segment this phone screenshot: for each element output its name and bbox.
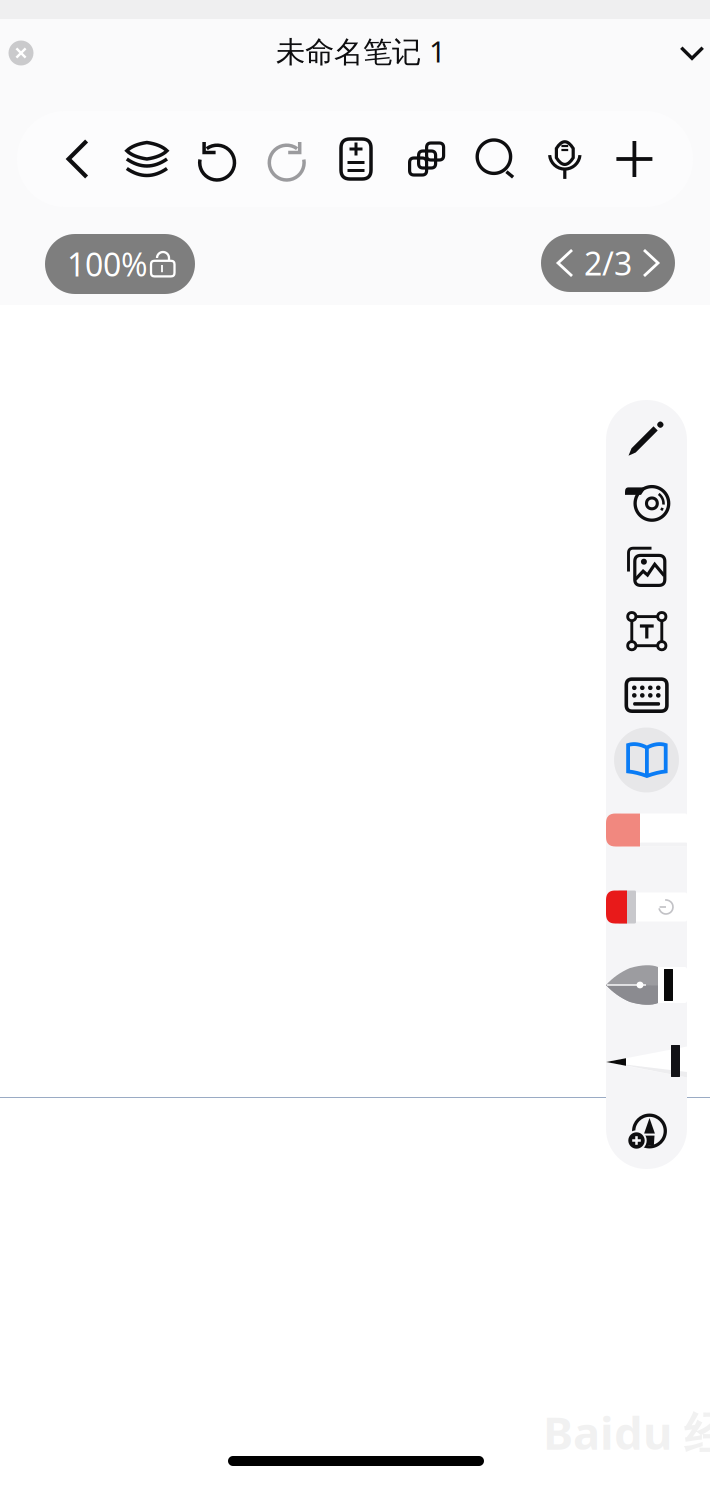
button[interactable]: Layers xyxy=(112,111,182,207)
button[interactable]: Marker xyxy=(606,884,687,930)
staticText: 2/3 xyxy=(584,242,632,284)
button[interactable]: Highlighter xyxy=(606,807,687,853)
button[interactable]: Search xyxy=(460,111,530,207)
button[interactable]: Undo xyxy=(182,111,252,207)
staticText: Baidu 经验 xyxy=(543,1402,710,1462)
button[interactable]: Insert image xyxy=(606,537,687,597)
button[interactable]: Pen xyxy=(606,407,687,467)
button[interactable]: Pencil xyxy=(606,1039,687,1085)
button[interactable]: Redo xyxy=(252,111,321,207)
button[interactable]: Tape xyxy=(606,472,687,532)
button[interactable]: Keyboard xyxy=(606,665,687,725)
button[interactable]: Templates xyxy=(391,111,460,207)
button[interactable]: Next page xyxy=(632,234,670,292)
button[interactable]: Previous page xyxy=(546,234,584,292)
button[interactable]: Page options xyxy=(321,111,391,207)
button[interactable]: Collapse note xyxy=(657,21,710,85)
button[interactable]: Add tool xyxy=(606,1103,687,1163)
button[interactable]: Close xyxy=(0,21,53,85)
staticText: 100% xyxy=(67,243,148,285)
button[interactable]: Reading mode xyxy=(606,730,687,790)
button[interactable]: Fountain pen xyxy=(606,962,687,1008)
staticText: 未命名笔记 1 xyxy=(276,31,446,70)
button[interactable]: Zoom 100 percent, unlocked xyxy=(45,234,195,294)
button[interactable]: Add xyxy=(600,111,669,207)
button[interactable]: Back xyxy=(43,111,112,207)
button[interactable]: Text box xyxy=(606,601,687,661)
button[interactable]: Voice memo xyxy=(530,111,600,207)
